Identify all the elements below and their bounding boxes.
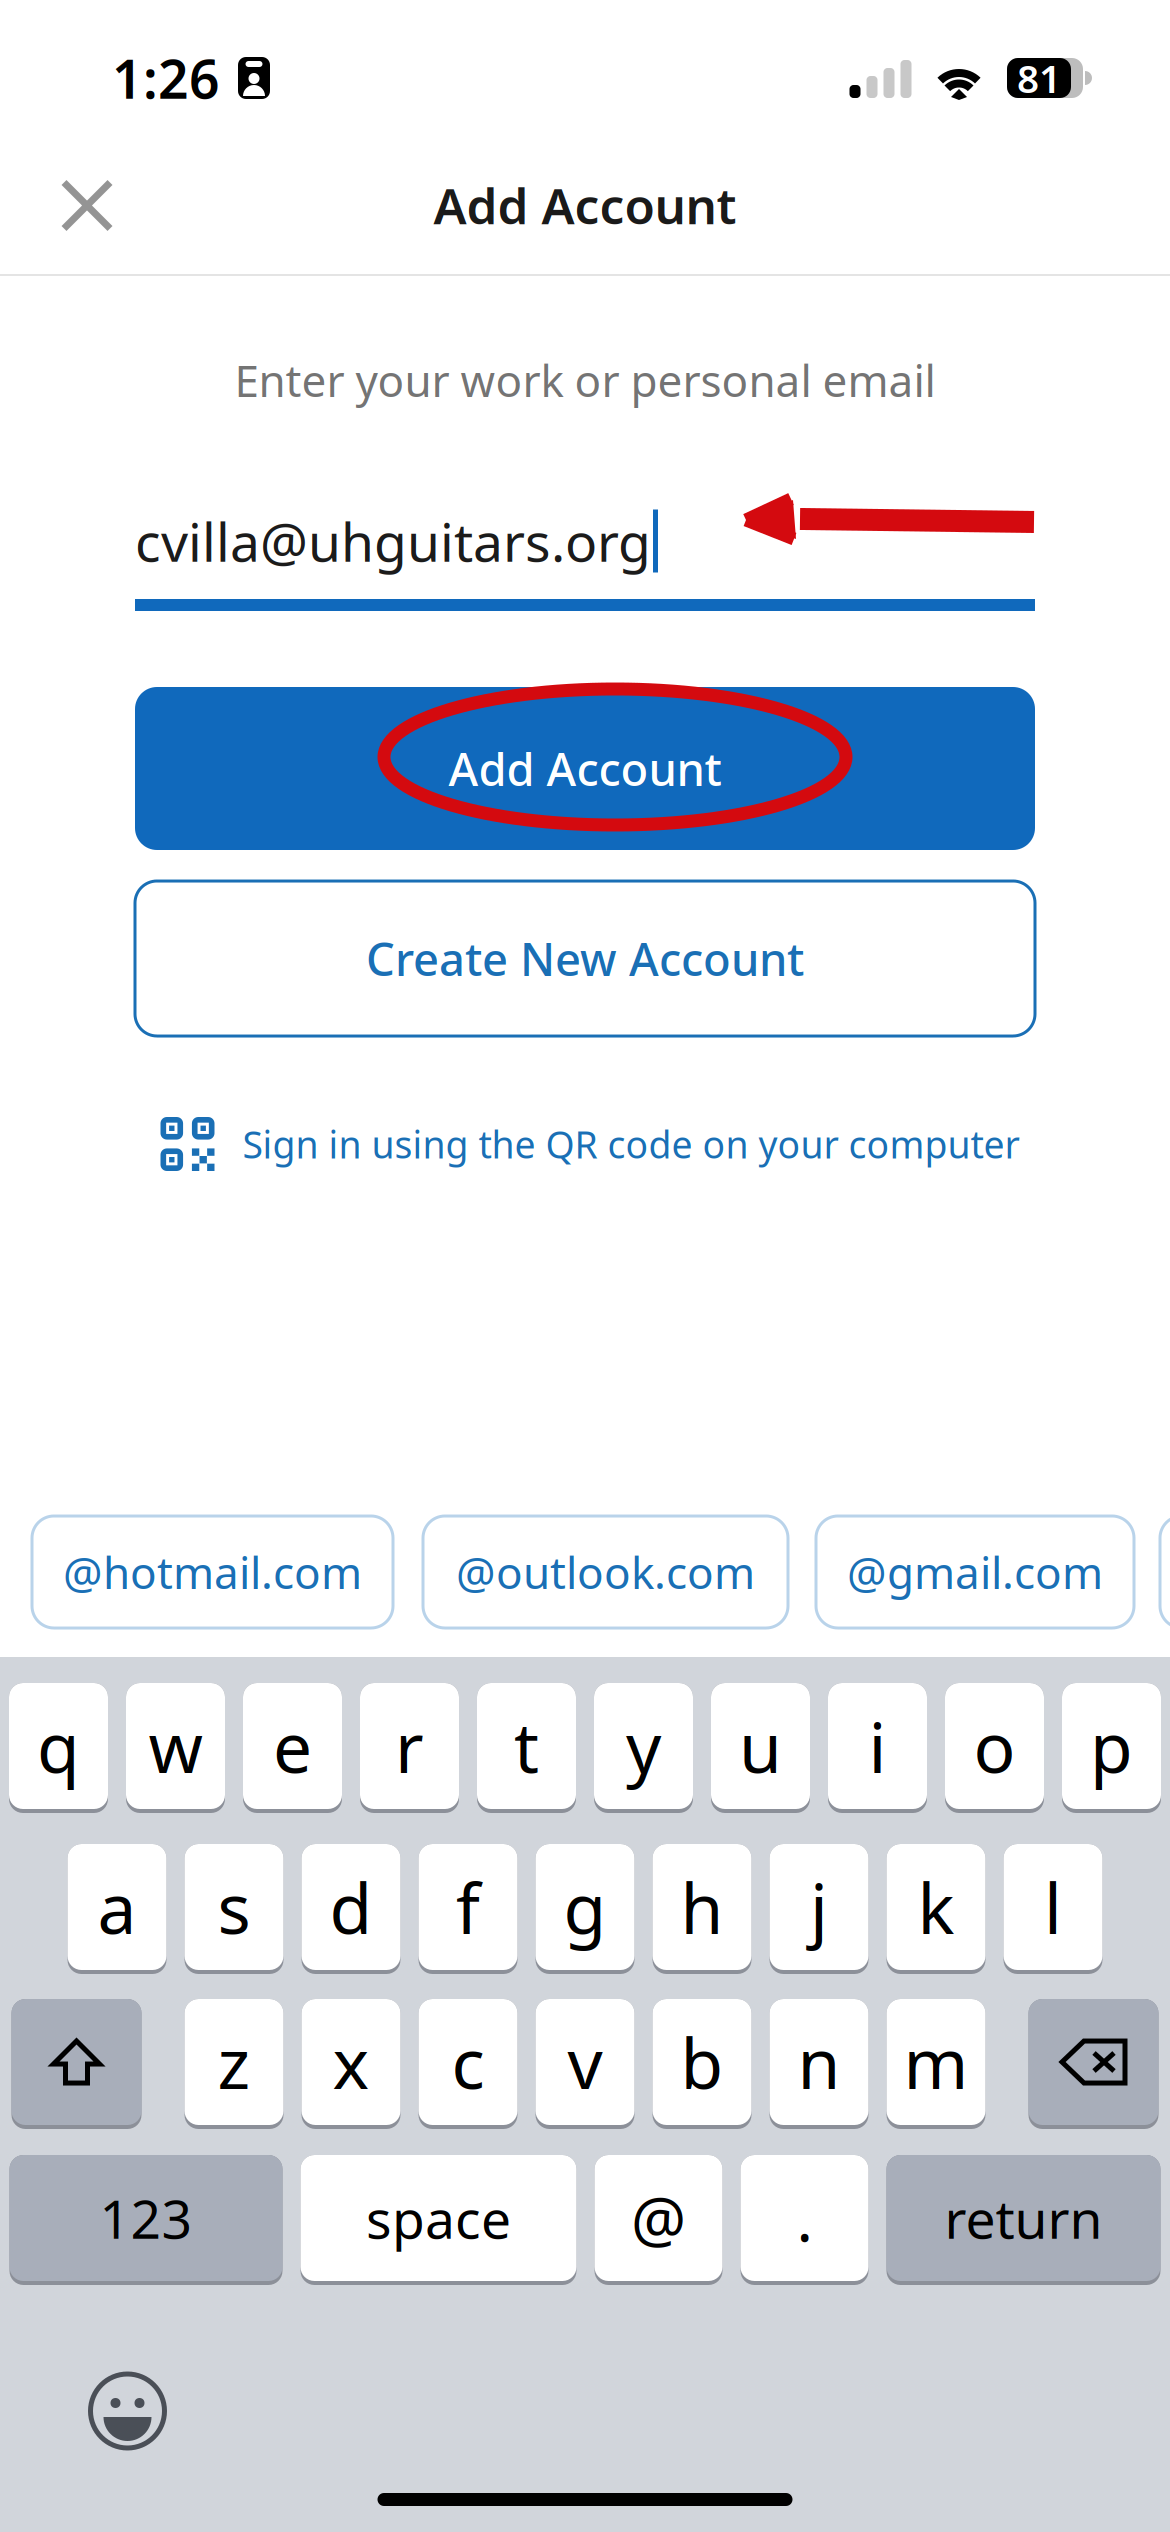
staticText: Enter your work or personal email bbox=[234, 351, 935, 409]
staticText: m bbox=[903, 2016, 968, 2108]
staticText: cvilla@uhguitars.org bbox=[135, 506, 651, 576]
staticText: v bbox=[567, 2016, 602, 2108]
button[interactable]: Create New Account bbox=[135, 881, 1035, 1036]
button[interactable]: space bbox=[300, 2155, 576, 2285]
button[interactable]: Emoji keyboard bbox=[87, 2371, 167, 2451]
button[interactable]: h bbox=[652, 1844, 751, 1974]
staticText: return bbox=[944, 2183, 1102, 2253]
staticText: a bbox=[97, 1861, 136, 1953]
staticText: 123 bbox=[99, 2183, 192, 2253]
staticText: @hotmail.com bbox=[63, 1543, 362, 1601]
button[interactable]: q bbox=[9, 1683, 108, 1813]
button[interactable]: j bbox=[769, 1844, 868, 1974]
button[interactable]: t bbox=[477, 1683, 576, 1813]
button[interactable]: f bbox=[418, 1844, 517, 1974]
staticText: Create New Account bbox=[366, 928, 804, 989]
staticText: l bbox=[1044, 1861, 1062, 1953]
button[interactable]: r bbox=[360, 1683, 459, 1813]
staticText: b bbox=[680, 2016, 723, 2108]
staticText: space bbox=[366, 2183, 511, 2253]
button[interactable]: Sign in using the QR code on your comput… bbox=[0, 1104, 1170, 1184]
button[interactable]: Add Account bbox=[135, 687, 1035, 850]
button[interactable]: n bbox=[769, 1999, 868, 2129]
staticText: h bbox=[680, 1861, 723, 1953]
staticText: c bbox=[451, 2016, 484, 2108]
button[interactable]: d bbox=[301, 1844, 400, 1974]
staticText: 1:26 bbox=[112, 43, 220, 113]
staticText: t bbox=[514, 1700, 539, 1792]
button[interactable]: z bbox=[184, 1999, 283, 2129]
staticText: j bbox=[810, 1861, 828, 1953]
staticText: @gmail.com bbox=[847, 1543, 1103, 1601]
button[interactable]: a bbox=[67, 1844, 166, 1974]
button[interactable]: return bbox=[886, 2155, 1160, 2285]
button[interactable]: e bbox=[243, 1683, 342, 1813]
staticText: n bbox=[797, 2016, 840, 2108]
staticText: r bbox=[395, 1700, 424, 1792]
staticText: f bbox=[456, 1861, 480, 1953]
staticText: @outlook.com bbox=[456, 1543, 755, 1601]
staticText: 81 bbox=[1017, 52, 1061, 104]
button[interactable]: @gmail.com bbox=[816, 1516, 1134, 1628]
staticText: p bbox=[1090, 1700, 1133, 1792]
staticText: i bbox=[868, 1700, 886, 1792]
staticText: s bbox=[217, 1861, 250, 1953]
button[interactable]: m bbox=[886, 1999, 985, 2129]
staticText: k bbox=[917, 1861, 954, 1953]
button[interactable]: x bbox=[301, 1999, 400, 2129]
staticText: u bbox=[739, 1700, 782, 1792]
staticText: y bbox=[626, 1700, 661, 1792]
staticText: e bbox=[273, 1700, 312, 1792]
staticText: @ bbox=[631, 2177, 686, 2259]
button[interactable]: Delete bbox=[1028, 1999, 1158, 2129]
staticText: q bbox=[37, 1700, 80, 1792]
staticText: g bbox=[563, 1861, 606, 1953]
staticText: Sign in using the QR code on your comput… bbox=[242, 1119, 1019, 1169]
button[interactable]: . bbox=[740, 2155, 868, 2285]
button[interactable]: w bbox=[126, 1683, 225, 1813]
button[interactable]: g bbox=[535, 1844, 634, 1974]
button[interactable]: Shift bbox=[11, 1999, 141, 2129]
staticText: o bbox=[973, 1700, 1015, 1792]
button[interactable]: s bbox=[184, 1844, 283, 1974]
staticText: x bbox=[332, 2016, 369, 2108]
staticText: d bbox=[329, 1861, 372, 1953]
button[interactable]: y bbox=[594, 1683, 693, 1813]
staticText: w bbox=[148, 1700, 202, 1792]
button[interactable]: b bbox=[652, 1999, 751, 2129]
button[interactable]: k bbox=[886, 1844, 985, 1974]
staticText: z bbox=[217, 2016, 250, 2108]
staticText: . bbox=[796, 2177, 812, 2259]
button[interactable]: @y bbox=[1160, 1516, 1170, 1628]
button[interactable]: @ bbox=[594, 2155, 722, 2285]
staticText: Add Account bbox=[433, 172, 736, 238]
button[interactable]: Close bbox=[32, 141, 142, 260]
staticText: Add Account bbox=[448, 738, 721, 799]
button[interactable]: @hotmail.com bbox=[32, 1516, 393, 1628]
button[interactable]: @outlook.com bbox=[423, 1516, 788, 1628]
button[interactable]: i bbox=[828, 1683, 927, 1813]
button[interactable]: c bbox=[418, 1999, 517, 2129]
button[interactable]: 123 bbox=[9, 2155, 282, 2285]
button[interactable]: u bbox=[711, 1683, 810, 1813]
button[interactable]: l bbox=[1003, 1844, 1102, 1974]
button[interactable]: v bbox=[535, 1999, 634, 2129]
button[interactable]: p bbox=[1062, 1683, 1161, 1813]
button[interactable]: o bbox=[945, 1683, 1044, 1813]
